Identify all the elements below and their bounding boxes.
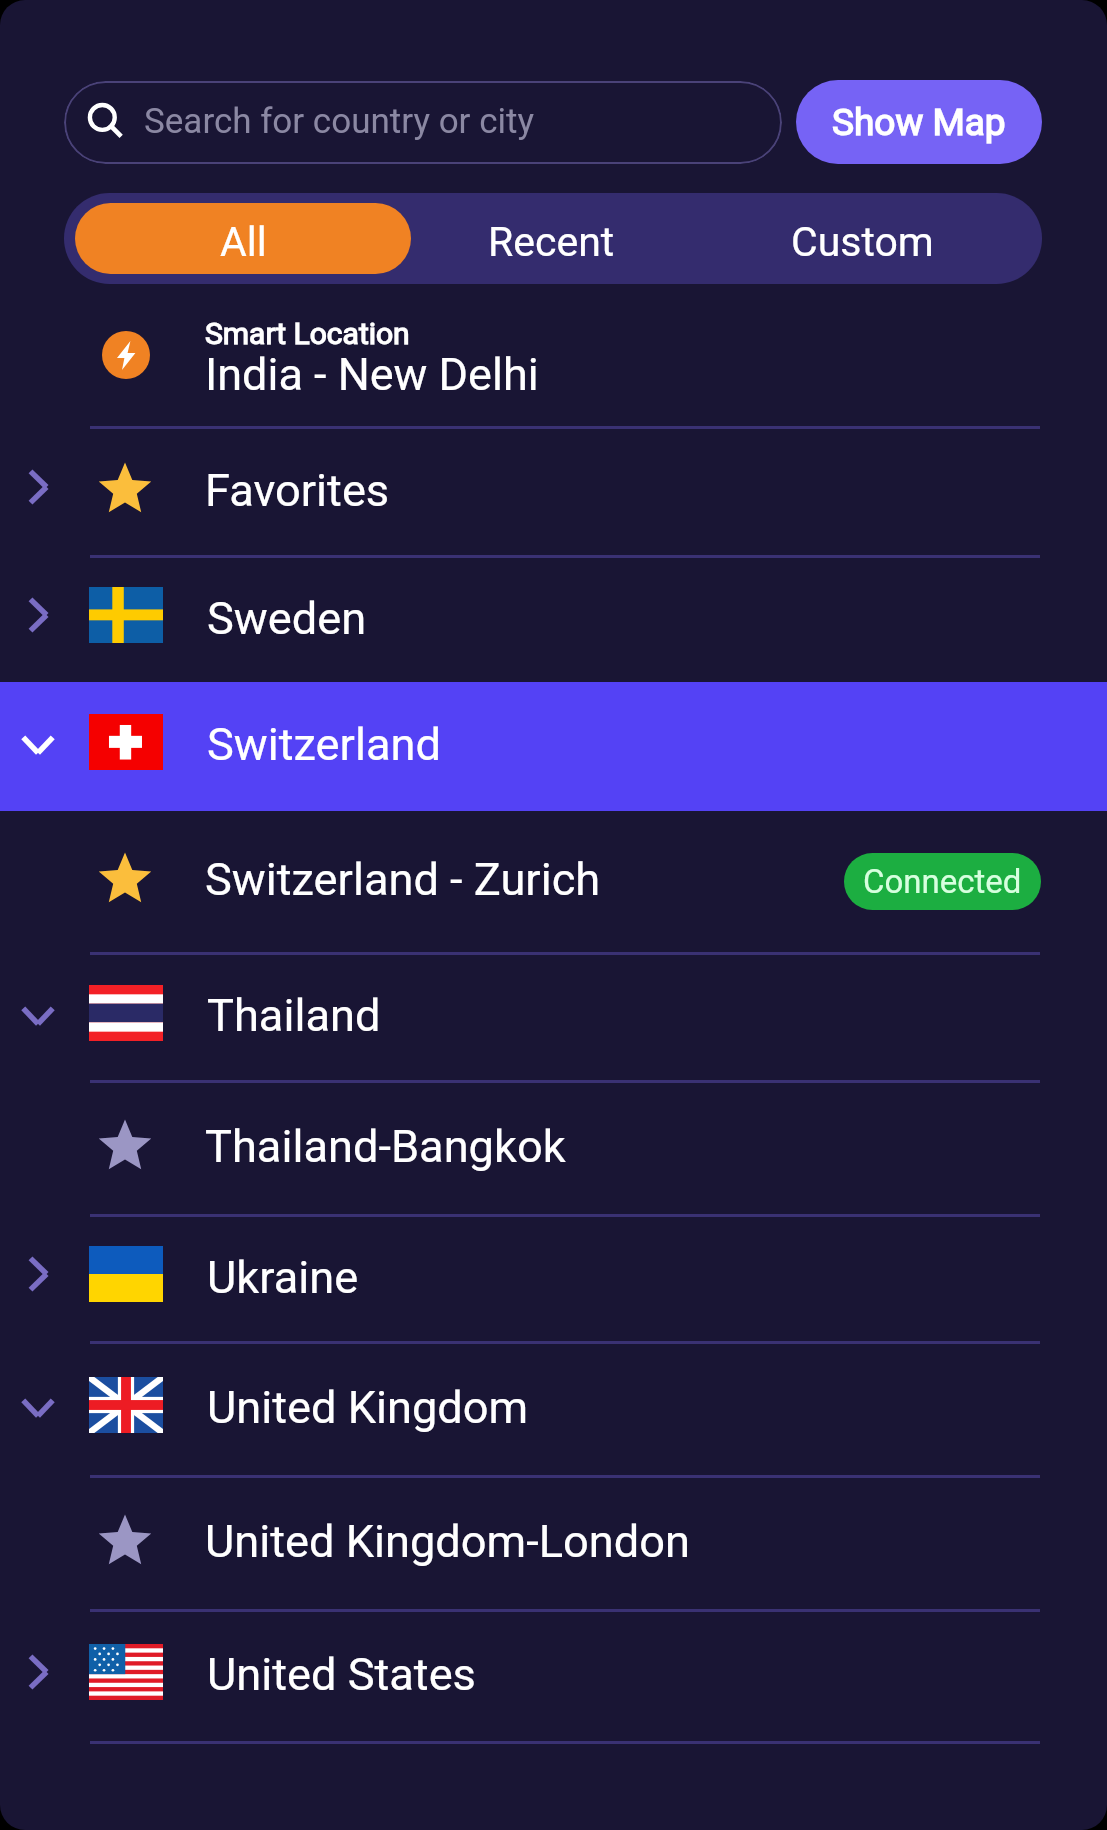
staticText: Recent bbox=[488, 218, 615, 266]
staticText: Connected bbox=[863, 862, 1022, 901]
staticText: Sweden bbox=[207, 592, 367, 645]
staticText: United States bbox=[207, 1648, 476, 1701]
button[interactable]: Connected bbox=[844, 853, 1041, 910]
staticText: Thailand-Bangkok bbox=[205, 1120, 566, 1173]
staticText: Custom bbox=[791, 218, 934, 266]
other: Expand bbox=[0, 1217, 89, 1341]
staticText: Switzerland bbox=[207, 718, 441, 771]
button[interactable]: Collapse bbox=[0, 682, 1107, 811]
other: Collapse bbox=[0, 1344, 89, 1475]
button[interactable]: Expand bbox=[0, 429, 1107, 555]
staticText: India - New Delhi bbox=[205, 348, 539, 401]
button[interactable]: Search bbox=[64, 81, 782, 164]
other: Expand bbox=[0, 558, 89, 682]
other: Collapse bbox=[0, 682, 89, 811]
other: Expand bbox=[0, 1612, 89, 1741]
button[interactable]: All bbox=[75, 203, 411, 274]
staticText: United Kingdom-London bbox=[205, 1515, 690, 1568]
button[interactable]: Expand bbox=[0, 558, 1107, 682]
staticText: Switzerland - Zurich bbox=[205, 853, 601, 906]
button[interactable]: Thailand-Bangkok bbox=[0, 1083, 1107, 1214]
button[interactable]: United Kingdom-London bbox=[0, 1478, 1107, 1609]
button[interactable]: Expand bbox=[0, 1612, 1107, 1741]
staticText: Thailand bbox=[207, 989, 381, 1042]
button[interactable]: Switzerland - Zurich bbox=[0, 811, 1107, 952]
button[interactable]: Collapse bbox=[0, 1344, 1107, 1475]
other: Collapse bbox=[0, 955, 89, 1080]
staticText: United Kingdom bbox=[207, 1381, 529, 1434]
staticText: Smart Location bbox=[205, 316, 410, 351]
button[interactable]: Show Map bbox=[796, 80, 1042, 164]
staticText: Favorites bbox=[205, 464, 390, 517]
staticText: All bbox=[220, 218, 267, 266]
button[interactable]: Custom bbox=[692, 193, 1042, 284]
staticText: Search for country or city bbox=[144, 101, 534, 142]
button[interactable]: Expand bbox=[0, 1217, 1107, 1341]
button[interactable]: Smart Location bbox=[0, 300, 1107, 426]
button[interactable]: Recent bbox=[411, 193, 692, 284]
staticText: Show Map bbox=[832, 101, 1006, 144]
staticText: Ukraine bbox=[207, 1251, 359, 1304]
button[interactable]: Collapse bbox=[0, 955, 1107, 1080]
other: Expand bbox=[0, 429, 89, 555]
